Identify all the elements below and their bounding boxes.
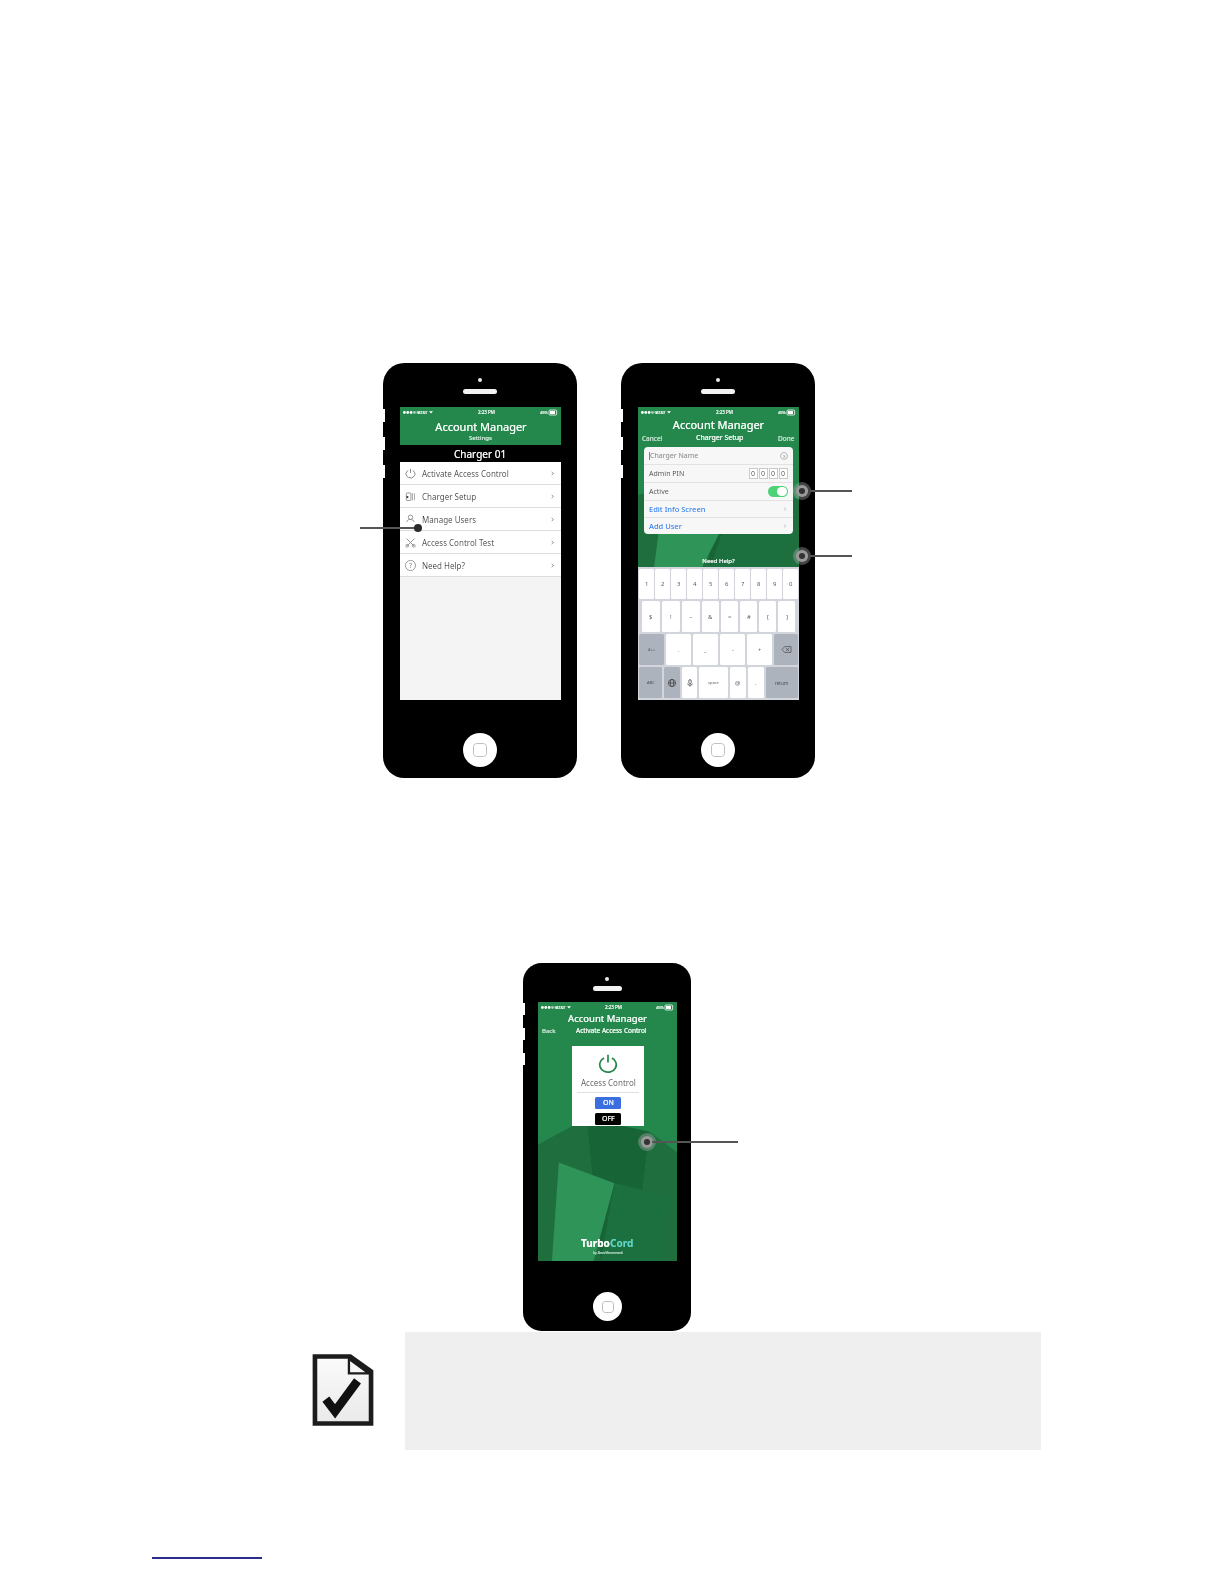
button[interactable]: Charger Name (649, 447, 788, 464)
staticText: Active (649, 487, 669, 497)
button[interactable]: 7 (735, 569, 750, 599)
staticText: x (783, 453, 786, 460)
staticText: ~ (689, 613, 693, 621)
button[interactable]: = (721, 601, 738, 632)
staticText: Settings (469, 434, 492, 442)
button[interactable]: [ (759, 601, 776, 632)
staticText: Access Control Test (422, 537, 495, 548)
staticText: Manage Users (422, 514, 477, 525)
staticText: . (678, 646, 680, 654)
staticText: ] (786, 613, 788, 621)
staticText: AT&T (418, 410, 428, 415)
button[interactable]: ? (400, 554, 561, 577)
staticText: Charger Setup (696, 433, 744, 443)
button[interactable]: Charger Setup (400, 485, 561, 508)
button[interactable]: 1 (639, 569, 654, 599)
button[interactable]: + (747, 634, 772, 665)
staticText: . (755, 679, 757, 687)
button[interactable]: Admin PIN (649, 465, 788, 482)
button[interactable]: ON (595, 1097, 621, 1109)
staticText: by AeroVironment (593, 1250, 623, 1255)
staticText: Add User (649, 521, 682, 531)
staticText: 7 (741, 580, 745, 588)
staticText: Activate Access Control (576, 1026, 647, 1035)
button[interactable]: Change keyboard (664, 667, 680, 698)
staticText: + (758, 646, 762, 654)
staticText: OFF (602, 1114, 615, 1124)
staticText: 45% (540, 410, 548, 415)
button[interactable]: Done (778, 434, 795, 443)
button[interactable]: $ (642, 601, 660, 632)
staticText: Need Help? (422, 560, 465, 571)
staticText: Charger 01 (454, 447, 507, 461)
button[interactable]: 8 (751, 569, 766, 599)
button[interactable]: Activate Access Control (400, 462, 561, 485)
staticText: Charger Setup (422, 491, 477, 502)
staticText: 0 (751, 469, 756, 479)
button[interactable]: @ (730, 667, 746, 698)
staticText: space (708, 680, 719, 685)
button[interactable]: 3 (671, 569, 686, 599)
button[interactable]: ~ (682, 601, 700, 632)
staticText: Activate Access Control (422, 468, 509, 479)
staticText: & (708, 613, 713, 621)
button[interactable]: - (720, 634, 745, 665)
staticText: AT&T (656, 410, 666, 415)
staticText: ! (670, 613, 672, 621)
button[interactable]: _ (693, 634, 718, 665)
button[interactable]: Back (542, 1027, 556, 1035)
button[interactable]: ] (778, 601, 795, 632)
staticText: 0 (771, 469, 776, 479)
button[interactable]: Edit Info Screen (649, 501, 788, 517)
staticText: 2:23 PM (605, 1004, 622, 1010)
staticText: ABC (647, 680, 655, 685)
button[interactable]: Dictation (682, 667, 697, 698)
staticText: 2 (661, 580, 665, 588)
button[interactable]: . (748, 667, 764, 698)
staticText: @ (735, 679, 741, 687)
button[interactable]: & (702, 601, 719, 632)
button[interactable]: Backspace (774, 634, 798, 665)
staticText: _ (704, 646, 707, 654)
button[interactable]: 9 (767, 569, 782, 599)
button[interactable]: Need Help? (638, 557, 799, 565)
staticText: 45% (778, 410, 786, 415)
button[interactable]: Add User (649, 518, 788, 534)
staticText: Account Manager (435, 419, 527, 434)
button[interactable]: ! (662, 601, 680, 632)
staticText: ? (409, 561, 413, 571)
staticText: 0 (789, 580, 793, 588)
button[interactable]: # (740, 601, 757, 632)
button[interactable]: Active (649, 483, 788, 500)
staticText: 2:23 PM (478, 409, 495, 415)
button[interactable]: 2 (655, 569, 670, 599)
staticText: 2:23 PM (716, 409, 733, 415)
button[interactable]: 6 (719, 569, 734, 599)
button[interactable]: ABC (639, 667, 662, 698)
staticText: Turbo (581, 1236, 610, 1250)
button[interactable]: space (699, 667, 728, 698)
button[interactable]: return (766, 667, 798, 698)
staticText: 1 (645, 580, 649, 588)
button[interactable]: Manage Users (400, 508, 561, 531)
button[interactable]: OFF (595, 1113, 621, 1125)
staticText: - (732, 646, 734, 654)
staticText: 4 (693, 580, 697, 588)
staticText: Charger Name (650, 451, 699, 461)
button[interactable]: 0 (783, 569, 798, 599)
button[interactable]: Cancel (642, 434, 663, 443)
staticText: Account Manager (538, 1012, 677, 1025)
button[interactable]: 4 (687, 569, 702, 599)
staticText: # (747, 613, 751, 621)
staticText: Admin PIN (649, 469, 685, 479)
staticText: AT&T (556, 1005, 566, 1010)
staticText: Access Control (581, 1077, 636, 1088)
button[interactable]: 5 (703, 569, 718, 599)
staticText: 8 (757, 580, 761, 588)
staticText: 5 (709, 580, 713, 588)
staticText: [ (767, 613, 769, 621)
staticText: 45% (656, 1005, 664, 1010)
button[interactable]: Access Control Test (400, 531, 561, 554)
button[interactable]: #+= (639, 634, 664, 665)
